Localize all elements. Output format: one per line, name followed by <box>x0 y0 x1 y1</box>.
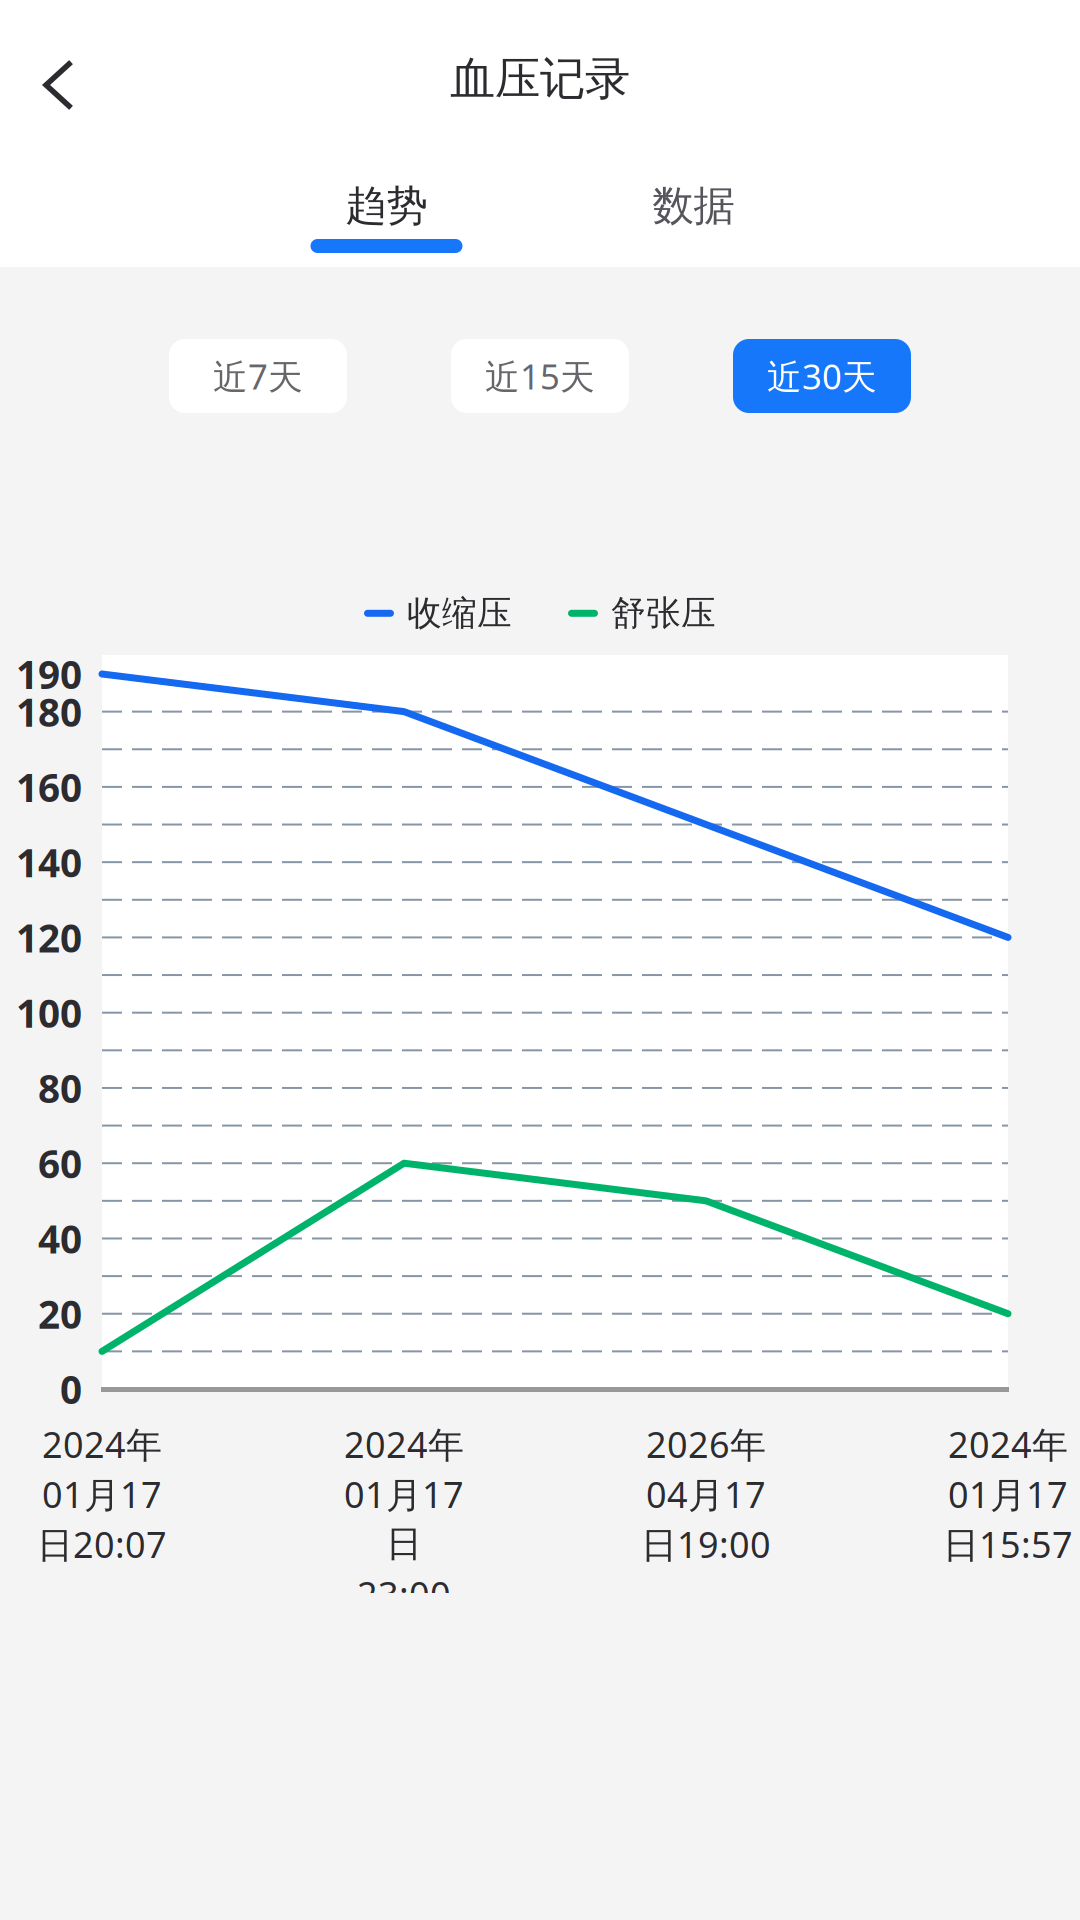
button[interactable]: 近7天 <box>169 339 347 413</box>
staticText: 120 <box>16 912 82 963</box>
staticText: 2024年 <box>948 1420 1068 1468</box>
button[interactable]: 近15天 <box>451 339 629 413</box>
button[interactable]: 趋势 <box>310 184 462 253</box>
staticText: 80 <box>38 1062 82 1114</box>
button[interactable]: Back <box>15 32 100 138</box>
staticText: 190 <box>16 648 82 700</box>
staticText: 近7天 <box>213 353 303 399</box>
staticText: 趋势 <box>345 181 427 231</box>
staticText: 2024年 <box>42 1420 162 1468</box>
button[interactable]: 近30天 <box>733 339 911 413</box>
staticText: 日 <box>386 1522 422 1566</box>
staticText: 60 <box>38 1137 82 1189</box>
staticText: 近15天 <box>485 353 595 399</box>
staticText: 140 <box>16 836 82 888</box>
staticText: 01月17 <box>948 1470 1068 1518</box>
staticText: 40 <box>38 1213 82 1264</box>
button[interactable]: 数据 <box>617 184 769 253</box>
staticText: 日20:07 <box>37 1520 167 1568</box>
staticText: 180 <box>16 686 82 737</box>
staticText: 0 <box>60 1363 82 1415</box>
staticText: 01月17 <box>344 1470 464 1518</box>
staticText: 100 <box>16 987 82 1038</box>
staticText: 日15:57 <box>943 1520 1073 1568</box>
staticText: 2024年 <box>344 1420 464 1468</box>
staticText: 近30天 <box>767 353 877 399</box>
staticText: 数据 <box>652 181 734 231</box>
staticText: 160 <box>16 761 82 812</box>
staticText: 血压记录 <box>450 51 630 107</box>
staticText: 收缩压 <box>407 592 512 635</box>
staticText: 23:00 <box>357 1570 451 1618</box>
staticText: 01月17 <box>42 1470 162 1518</box>
staticText: 20 <box>38 1288 82 1339</box>
staticText: 04月17 <box>646 1470 766 1518</box>
staticText: 舒张压 <box>611 592 716 635</box>
staticText: 2026年 <box>646 1420 766 1468</box>
staticText: 日19:00 <box>641 1520 771 1568</box>
